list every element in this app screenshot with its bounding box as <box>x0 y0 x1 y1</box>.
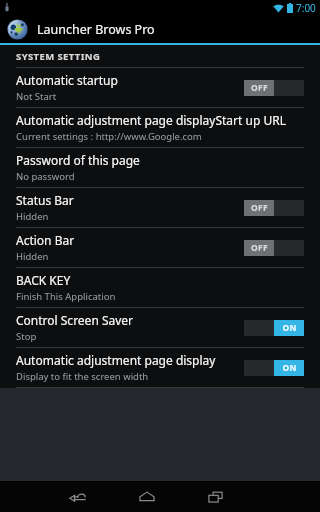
staticText: Current settings : http://www.Google.com <box>16 130 202 143</box>
staticText: Control Screen Saver <box>16 312 134 328</box>
staticText: Hidden <box>16 250 49 263</box>
staticText: Automatic adjustment page displayStart u… <box>16 112 286 128</box>
staticText: Automatic adjustment page display <box>16 352 216 368</box>
button[interactable]: Status Bar <box>0 188 320 227</box>
staticText: No password <box>16 170 75 183</box>
staticText: SYSTEM SETTING <box>16 50 101 63</box>
button[interactable]: Home <box>131 481 162 512</box>
button[interactable]: Back <box>62 481 93 512</box>
button[interactable]: Switch on <box>244 320 304 336</box>
staticText: Finish This Application <box>16 290 116 303</box>
staticText: Action Bar <box>16 232 75 248</box>
button[interactable]: Launcher Brows Pro <box>0 15 320 43</box>
button[interactable]: Automatic adjustment page display <box>0 348 320 387</box>
staticText: Stop <box>16 330 37 343</box>
button[interactable]: Switch on <box>244 360 304 376</box>
button[interactable]: Switch off <box>244 240 304 256</box>
staticText: Not Start <box>16 90 57 103</box>
button[interactable]: Recent apps <box>200 481 231 512</box>
staticText: Password of this page <box>16 152 140 168</box>
staticText: OFF <box>251 242 268 254</box>
button[interactable]: Control Screen Saver <box>0 308 320 347</box>
button[interactable]: Automatic startup <box>0 68 320 107</box>
staticText: Launcher Brows Pro <box>37 21 155 38</box>
staticText: Automatic startup <box>16 72 118 88</box>
staticText: ON <box>282 322 297 334</box>
button[interactable]: Switch off <box>244 80 304 96</box>
staticText: OFF <box>251 82 268 94</box>
staticText: ON <box>282 362 297 374</box>
staticText: Hidden <box>16 210 49 223</box>
button[interactable]: Action Bar <box>0 228 320 267</box>
staticText: OFF <box>251 202 268 214</box>
staticText: 7:00 <box>296 1 316 15</box>
button[interactable]: Password of this page <box>0 148 320 187</box>
button[interactable]: Automatic adjustment page displayStart u… <box>0 108 320 147</box>
staticText: Status Bar <box>16 192 74 208</box>
staticText: BACK KEY <box>16 272 71 288</box>
button[interactable]: Switch off <box>244 200 304 216</box>
button[interactable]: BACK KEY <box>0 268 320 307</box>
staticText: Display to fit the screen width <box>16 370 149 383</box>
